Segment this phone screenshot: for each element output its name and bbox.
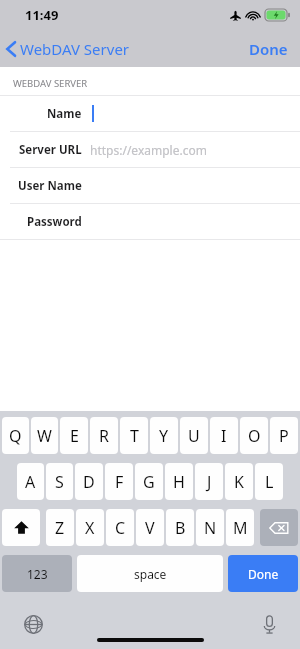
button[interactable]: 123 [2,555,72,592]
staticText: 123 [27,566,48,582]
button[interactable]: WebDAV Server [0,35,140,63]
button[interactable]: T [120,417,148,454]
button[interactable]: Backspace [260,509,298,546]
staticText: S [55,471,64,493]
button[interactable]: I [210,417,238,454]
staticText: D [83,471,95,493]
button[interactable]: User Name [0,168,300,203]
button[interactable]: J [195,463,223,500]
staticText: P [279,425,289,447]
button[interactable]: Name [0,96,300,131]
staticText: Password [27,214,82,230]
staticText: W [37,425,52,447]
button[interactable]: E [60,417,88,454]
staticText: K [234,471,244,493]
staticText: H [173,471,185,493]
staticText: A [25,471,36,493]
button[interactable]: R [90,417,118,454]
button[interactable]: A [17,463,44,500]
staticText: R [99,425,109,447]
staticText: https://example.com [90,142,207,158]
button[interactable]: C [106,509,134,546]
button[interactable]: L [255,463,283,500]
button[interactable]: D [75,463,103,500]
button[interactable]: B [166,509,194,546]
button[interactable]: Z [46,509,74,546]
staticText: B [175,517,186,539]
button[interactable]: U [180,417,208,454]
staticText: N [204,517,217,539]
button[interactable]: X [76,509,104,546]
button[interactable]: Password [0,204,300,239]
button[interactable]: Server URL [0,132,300,167]
button[interactable]: H [165,463,193,500]
button[interactable]: S [46,463,73,500]
button[interactable]: O [240,417,268,454]
staticText: X [85,517,95,539]
button[interactable]: F [105,463,133,500]
button[interactable]: V [136,509,164,546]
staticText: 11:49 [25,6,59,24]
button[interactable]: Y [150,417,178,454]
staticText: T [130,425,139,447]
button[interactable]: Done [237,33,300,65]
staticText: Done [249,39,288,59]
button[interactable]: K [225,463,253,500]
staticText: Z [55,517,65,539]
button[interactable]: Dictate [257,609,282,640]
staticText: U [188,425,200,447]
button[interactable]: Change keyboard [18,609,49,640]
staticText: F [115,471,124,493]
staticText: WebDAV Server [20,39,130,59]
staticText: Name [47,106,82,122]
staticText: Y [159,425,169,447]
staticText: User Name [18,178,82,194]
staticText: O [248,425,261,447]
staticText: J [207,471,212,493]
button[interactable]: Q [2,417,29,454]
button[interactable]: Done [228,555,298,592]
staticText: WEBDAV SERVER [13,77,88,90]
staticText: G [143,471,155,493]
button[interactable]: N [196,509,224,546]
staticText: M [233,517,248,539]
staticText: Q [9,425,22,447]
staticText: Server URL [19,142,82,158]
button[interactable]: Shift [2,509,40,546]
staticText: E [70,425,79,447]
button[interactable]: W [31,417,58,454]
staticText: Done [248,566,279,582]
button[interactable]: M [226,509,254,546]
staticText: space [134,566,167,582]
staticText: L [265,471,274,493]
button[interactable]: G [135,463,163,500]
staticText: I [221,425,227,447]
staticText: C [115,517,126,539]
staticText: V [145,517,155,539]
button[interactable]: space [77,555,223,592]
button[interactable]: P [270,417,298,454]
